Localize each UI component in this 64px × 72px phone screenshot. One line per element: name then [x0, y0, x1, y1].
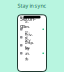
staticText: Settings: [20, 15, 36, 29]
button[interactable]: Display: [18, 41, 46, 49]
staticText: General: [24, 18, 29, 40]
button[interactable]: Privacy: [18, 33, 46, 41]
staticText: 9:41: [20, 14, 27, 20]
staticText: Display: [24, 40, 33, 51]
button[interactable]: Sounds: [18, 49, 46, 57]
button[interactable]: General: [18, 25, 46, 33]
staticText: Sounds: [24, 45, 29, 61]
staticText: Privacy: [24, 32, 32, 43]
staticText: Stay in sync: [17, 2, 46, 9]
